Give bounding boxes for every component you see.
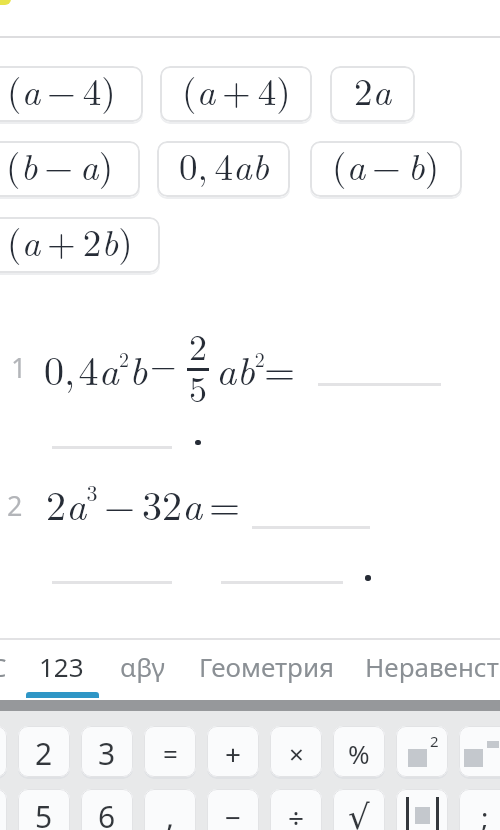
button[interactable]: (a − b) xyxy=(310,141,462,197)
staticText: (b − a) xyxy=(6,141,114,190)
staticText: 1 xyxy=(11,349,27,386)
staticText: + xyxy=(225,735,242,773)
staticText: (a − b) xyxy=(332,141,440,190)
button[interactable] xyxy=(0,726,7,777)
button[interactable]: (a + 2b) xyxy=(0,217,160,273)
button[interactable]: C xyxy=(0,649,7,684)
button[interactable]: (a + 4) xyxy=(160,66,312,122)
button[interactable]: 2 xyxy=(18,726,70,777)
staticText: (a + 2b) xyxy=(7,217,133,266)
button[interactable]: % xyxy=(333,726,385,777)
button[interactable]: 2a xyxy=(330,66,415,122)
staticText: 2a xyxy=(354,66,392,115)
staticText: (a − 4) xyxy=(7,66,116,115)
staticText: = xyxy=(163,736,178,771)
button[interactable]: 5 xyxy=(18,789,70,830)
staticText: 2 xyxy=(35,733,53,774)
button[interactable]: , xyxy=(144,789,196,830)
staticText: (a + 4) xyxy=(182,66,291,115)
staticText: ÷ xyxy=(288,798,305,830)
staticText: 5 xyxy=(35,796,53,830)
staticText: ; xyxy=(481,798,489,830)
button[interactable]: Геометрия xyxy=(199,649,335,684)
button[interactable]: αβγ xyxy=(120,649,166,684)
button[interactable] xyxy=(396,789,448,830)
staticText: , xyxy=(166,796,175,830)
button[interactable]: 123 xyxy=(39,649,84,684)
staticText: 5 xyxy=(189,361,207,412)
button[interactable] xyxy=(459,726,500,777)
button[interactable]: (b − a) xyxy=(0,141,140,197)
staticText: 0, 4a2b xyxy=(44,340,148,397)
button[interactable]: ÷ xyxy=(270,789,322,830)
button[interactable]: − xyxy=(207,789,259,830)
staticText: 2a3 − 32a = xyxy=(46,475,241,532)
staticText: = xyxy=(264,340,296,397)
button[interactable]: × xyxy=(270,726,322,777)
button[interactable]: √ xyxy=(333,789,385,830)
staticText: √ xyxy=(348,797,370,830)
staticText: − xyxy=(150,339,177,387)
staticText: × xyxy=(289,736,304,771)
staticText: ab2 xyxy=(216,340,265,397)
button[interactable]: = xyxy=(144,726,196,777)
staticText: % xyxy=(348,736,370,771)
staticText: 2 xyxy=(7,487,23,524)
button[interactable]: (a − 4) xyxy=(0,66,143,122)
button[interactable]: 3 xyxy=(81,726,133,777)
staticText: 6 xyxy=(98,796,116,830)
button[interactable]: 2 xyxy=(396,726,448,777)
staticText: 3 xyxy=(98,733,116,774)
button[interactable] xyxy=(0,789,7,830)
staticText: 2 xyxy=(189,319,207,370)
staticText: 2 xyxy=(430,731,439,751)
button[interactable]: Неравенства xyxy=(365,649,500,684)
button[interactable]: 0, 4ab xyxy=(157,141,290,197)
button[interactable]: + xyxy=(207,726,259,777)
button[interactable]: ; xyxy=(459,789,500,830)
button[interactable]: 6 xyxy=(81,789,133,830)
staticText: 0, 4ab xyxy=(179,141,269,190)
staticText: − xyxy=(225,798,242,830)
